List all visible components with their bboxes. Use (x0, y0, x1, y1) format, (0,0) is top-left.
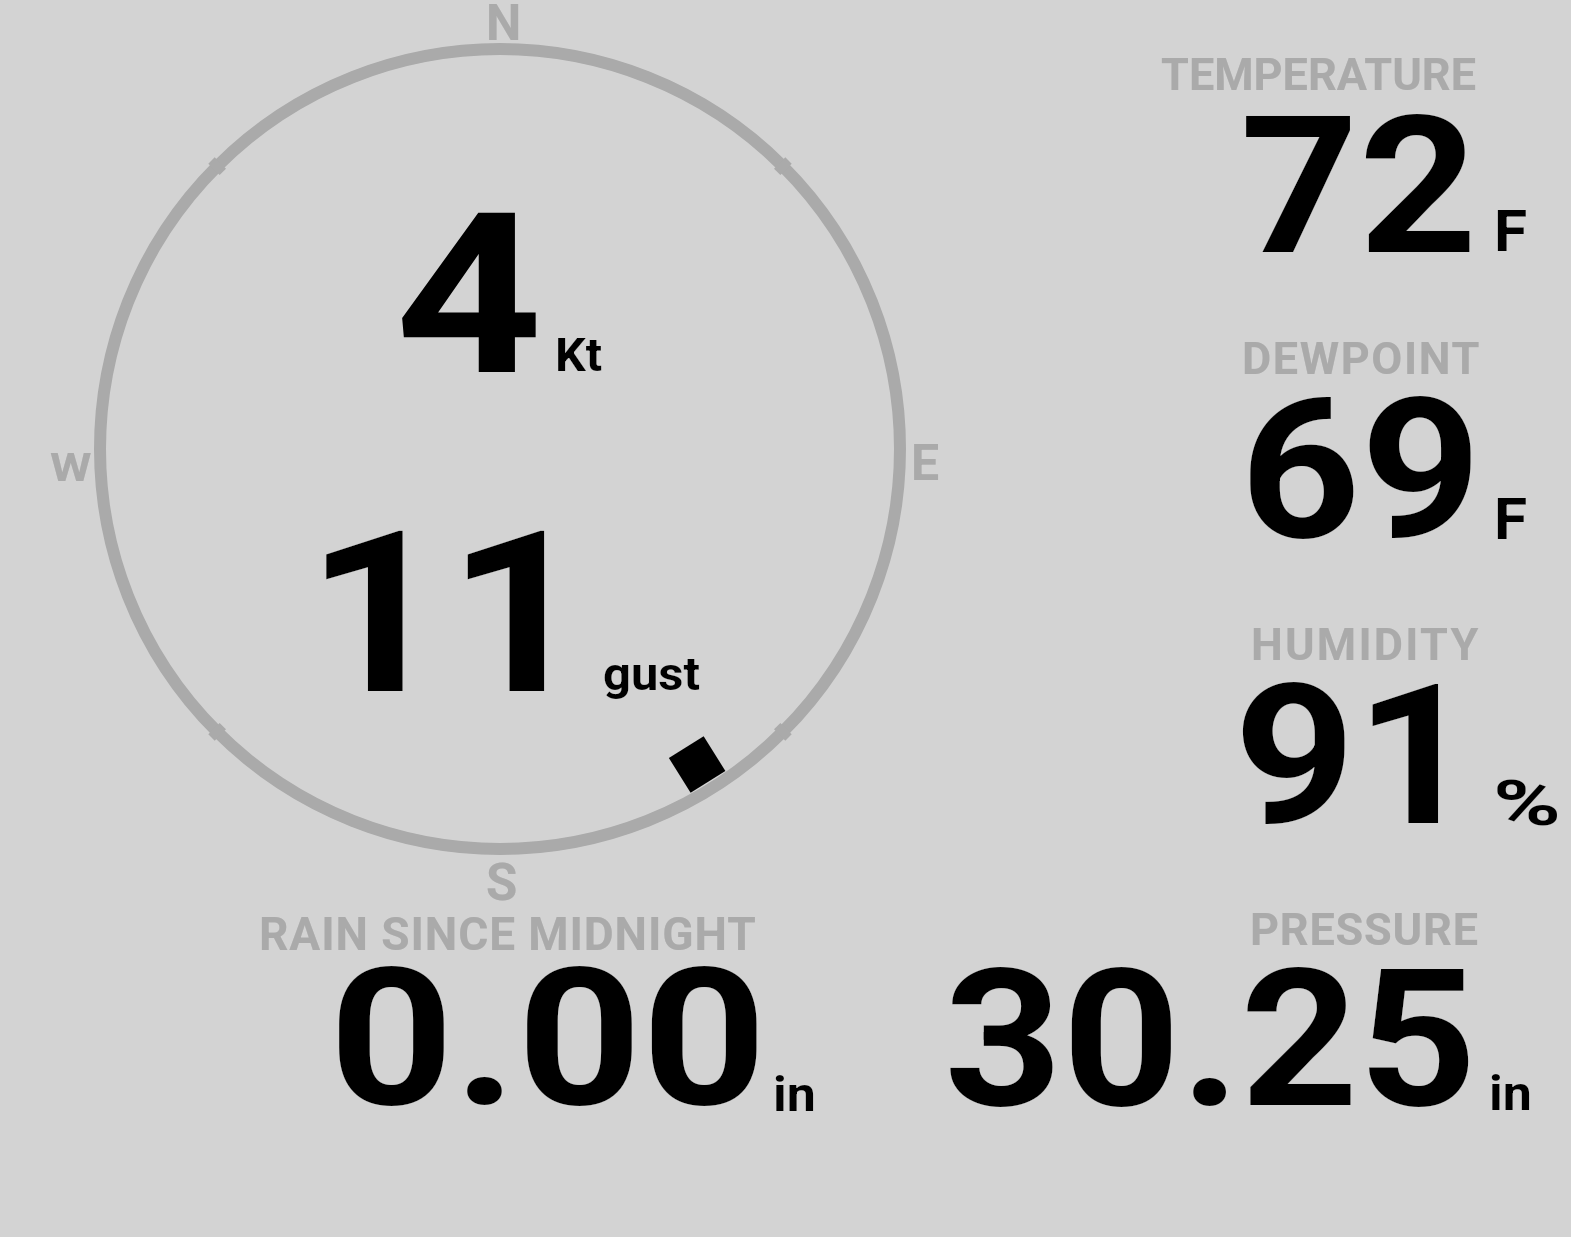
staticText: gust (603, 646, 701, 701)
staticText: 72 (1240, 75, 1478, 299)
staticText: PRESSURE (1250, 903, 1479, 956)
staticText: W (50, 444, 92, 490)
button[interactable]: Dewpoint 69 degrees Fahrenheit (1130, 320, 1571, 590)
staticText: S (486, 853, 518, 912)
staticText: RAIN SINCE MIDNIGHT (259, 907, 757, 961)
staticText: in (1489, 1065, 1532, 1121)
staticText: % (1493, 767, 1562, 841)
staticText: DEWPOINT (1242, 332, 1481, 385)
button[interactable]: Pressure 30.25 inches (900, 895, 1540, 1125)
staticText: in (773, 1066, 816, 1122)
staticText: 30.25 (944, 928, 1477, 1152)
button[interactable]: Temperature 72 degrees Fahrenheit (1130, 36, 1571, 306)
staticText: F (1494, 486, 1528, 553)
staticText: 11 (306, 483, 590, 746)
staticText: Kt (555, 327, 602, 382)
staticText: E (911, 434, 940, 493)
staticText: 69 (1240, 356, 1482, 585)
button[interactable]: Wind speed and direction (96, 44, 906, 856)
staticText: N (486, 0, 522, 53)
button[interactable]: Rain since midnight 0.00 inches (230, 895, 830, 1125)
staticText: 0.00 (329, 927, 768, 1151)
button[interactable]: Humidity 91 percent (1130, 606, 1571, 876)
staticText: F (1494, 198, 1528, 265)
staticText: 91 (1234, 643, 1477, 870)
staticText: TEMPERATURE (1161, 48, 1476, 101)
staticText: 4 (395, 164, 543, 427)
staticText: HUMIDITY (1251, 618, 1481, 671)
